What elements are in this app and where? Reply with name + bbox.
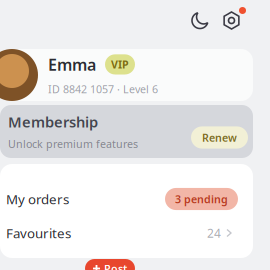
staticText: 24 [207, 225, 221, 241]
staticText: Membership [8, 112, 98, 132]
staticText: ID 8842 1057 · Level 6 [48, 82, 158, 96]
staticText: Unlock premium features [8, 137, 138, 151]
button[interactable]: Night mode [185, 5, 215, 35]
staticText: Emma [48, 54, 96, 75]
staticText: Post [104, 261, 127, 270]
button[interactable]: Emma [0, 49, 253, 101]
button[interactable]: Settings [216, 5, 247, 36]
staticText: 3 pending [175, 192, 228, 206]
button[interactable]: Membership [0, 105, 253, 158]
button[interactable]: My orders [0, 182, 253, 216]
staticText: VIP [111, 57, 129, 71]
button[interactable]: Favourites [0, 216, 253, 250]
staticText: Favourites [6, 224, 71, 242]
staticText: Renew [202, 130, 237, 145]
staticText: My orders [6, 190, 69, 208]
button[interactable]: Post [85, 259, 135, 270]
